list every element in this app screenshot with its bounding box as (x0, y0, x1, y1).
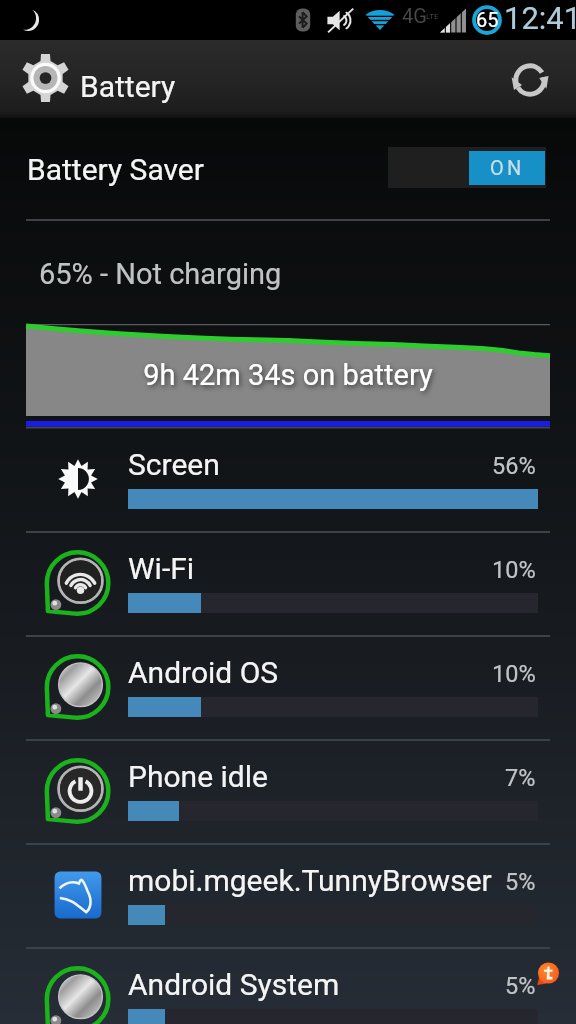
staticText: Battery (80, 69, 176, 104)
staticText: 7% (505, 764, 536, 792)
staticText: Android OS (128, 655, 279, 690)
staticText: Wi-Fi (128, 551, 195, 586)
staticText: Android System (128, 967, 340, 1002)
staticText: 5% (505, 972, 536, 1000)
button[interactable]: Android OS (0, 636, 576, 740)
staticText: Screen (128, 447, 220, 482)
staticText: mobi.mgeek.TunnyBrowser (128, 863, 492, 898)
staticText: 56% (492, 452, 536, 480)
staticText: Phone idle (128, 759, 268, 794)
staticText: 4G (402, 4, 427, 27)
staticText: 10% (492, 556, 536, 584)
button[interactable]: Refresh (498, 40, 576, 118)
button[interactable]: Screen (0, 428, 576, 532)
staticText: 9h 42m 34s on battery (143, 358, 433, 392)
button[interactable]: Android System (0, 948, 576, 1024)
staticText: ON (490, 156, 525, 179)
staticText: 12:41 (504, 0, 576, 36)
button[interactable]: Battery Saver toggle (388, 147, 546, 188)
staticText: LTE (426, 12, 439, 21)
staticText: 65 (476, 8, 499, 31)
button[interactable]: Phone idle (0, 740, 576, 844)
staticText: 10% (492, 660, 536, 688)
button[interactable]: Battery Saver (0, 118, 576, 219)
button[interactable]: Battery (0, 40, 576, 118)
staticText: 5% (505, 868, 536, 896)
staticText: Battery Saver (27, 152, 204, 187)
button[interactable]: mobi.mgeek.TunnyBrowser (0, 844, 576, 948)
staticText: 65% - Not charging (39, 257, 282, 291)
button[interactable]: Wi-Fi (0, 532, 576, 636)
